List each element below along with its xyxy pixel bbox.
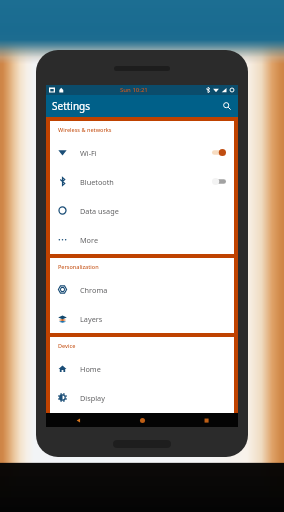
button[interactable]: Wi-Fi (50, 138, 234, 167)
staticText: Display (80, 393, 105, 403)
staticText: Home (80, 364, 101, 374)
staticText: More (80, 235, 99, 245)
button[interactable]: More (50, 225, 234, 254)
button[interactable]: Chroma (50, 275, 234, 304)
staticText: Layers (80, 314, 103, 324)
staticText: Wireless & networks (58, 126, 112, 133)
staticText: Bluetooth (80, 177, 114, 187)
button[interactable]: Bluetooth (50, 167, 234, 196)
button[interactable]: Recents (174, 413, 238, 427)
button[interactable]: Search (216, 95, 238, 117)
button[interactable]: Home (110, 413, 174, 427)
button[interactable]: Back (46, 413, 110, 427)
staticText: Device (58, 342, 76, 349)
button[interactable] (212, 148, 226, 157)
staticText: Data usage (80, 206, 119, 216)
staticText: Personalization (58, 263, 99, 270)
button[interactable]: Home (50, 354, 234, 383)
button[interactable]: Layers (50, 304, 234, 333)
staticText: Sun 10:21 (120, 86, 148, 94)
staticText: Chroma (80, 285, 108, 295)
button[interactable]: Display (50, 383, 234, 412)
button[interactable] (212, 177, 226, 186)
button[interactable]: Data usage (50, 196, 234, 225)
staticText: Wi-Fi (80, 148, 97, 158)
staticText: Settings (52, 99, 91, 113)
